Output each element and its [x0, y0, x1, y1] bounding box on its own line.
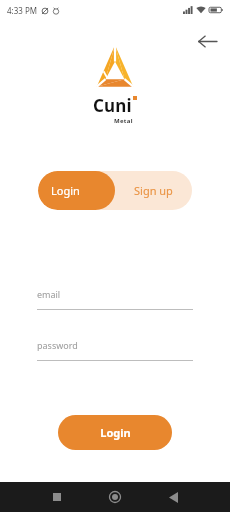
button[interactable]: Back	[192, 26, 222, 56]
button[interactable]: Login	[38, 171, 115, 210]
button[interactable]: Home	[102, 484, 128, 510]
button[interactable]: Sign up	[115, 171, 192, 210]
staticText: email	[37, 288, 61, 300]
staticText: password	[37, 339, 78, 351]
button[interactable]: Login	[58, 415, 172, 450]
button[interactable]: password	[37, 339, 193, 361]
button[interactable]: Recent apps	[44, 484, 70, 510]
staticText: Cuni	[93, 94, 132, 117]
button[interactable]: Back	[160, 484, 186, 510]
staticText: 4:33 PM	[7, 5, 38, 16]
staticText: Metal	[114, 117, 133, 125]
staticText: Login	[51, 183, 80, 198]
staticText: Login	[100, 425, 131, 440]
button[interactable]: email	[37, 288, 193, 310]
staticText: Sign up	[134, 183, 173, 198]
